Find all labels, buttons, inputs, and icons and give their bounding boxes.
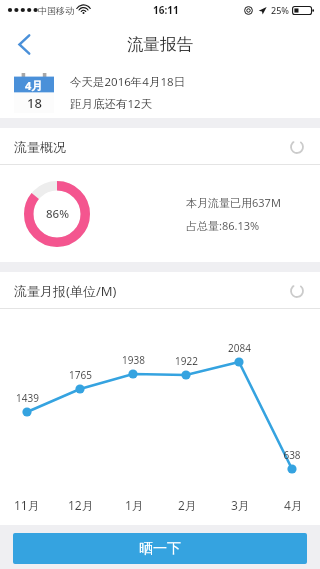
- button[interactable]: Refresh: [284, 278, 310, 304]
- staticText: 1922: [175, 354, 198, 368]
- staticText: 1月: [125, 497, 144, 513]
- staticText: 16:11: [153, 3, 179, 17]
- staticText: 4月: [284, 497, 303, 513]
- button[interactable]: 4月: [0, 68, 320, 118]
- staticText: 638: [283, 448, 301, 462]
- staticText: 12月: [68, 497, 94, 513]
- button[interactable]: Refresh: [284, 134, 310, 160]
- staticText: 2月: [178, 497, 197, 513]
- staticText: 晒一下: [139, 540, 181, 558]
- staticText: 流量月报(单位/M): [14, 282, 117, 300]
- button[interactable]: 晒一下: [13, 533, 307, 564]
- staticText: 本月流量已用637M: [186, 195, 281, 210]
- staticText: 今天是2016年4月18日: [70, 74, 186, 90]
- staticText: 86%: [46, 206, 69, 222]
- staticText: 3月: [231, 497, 250, 513]
- staticText: 1765: [69, 368, 92, 382]
- staticText: 流量报告: [127, 34, 193, 55]
- staticText: 11月: [14, 497, 40, 513]
- staticText: 流量概况: [14, 139, 66, 155]
- staticText: 中国移动: [38, 5, 74, 16]
- staticText: 4月: [25, 78, 43, 93]
- staticText: 2084: [228, 341, 251, 355]
- staticText: 1938: [122, 353, 145, 367]
- button[interactable]: Back: [0, 20, 48, 68]
- staticText: 25%: [271, 4, 289, 16]
- staticText: 1439: [16, 391, 39, 405]
- staticText: 18: [27, 94, 42, 112]
- staticText: 距月底还有12天: [70, 96, 153, 112]
- staticText: 占总量:86.13%: [186, 218, 260, 233]
